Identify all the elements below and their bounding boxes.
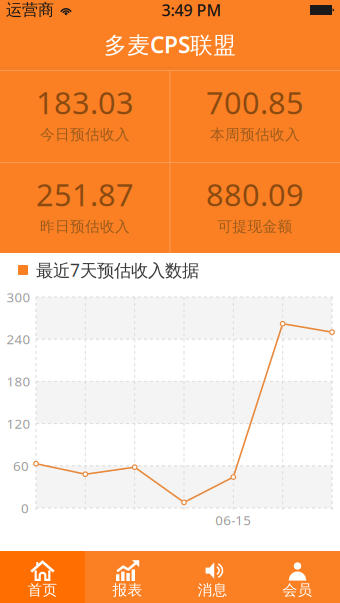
button[interactable]: 183.03 <box>0 69 170 161</box>
staticText: 最近7天预估收入数据 <box>36 258 199 281</box>
button[interactable]: 251.87 <box>0 161 170 253</box>
staticText: 会员 <box>282 581 312 599</box>
button[interactable]: 会员 <box>255 551 340 603</box>
staticText: 251.87 <box>36 174 134 215</box>
staticText: 120 <box>6 415 30 432</box>
staticText: 880.09 <box>206 174 304 215</box>
staticText: 183.03 <box>36 82 134 123</box>
button[interactable]: 880.09 <box>170 161 340 253</box>
button[interactable]: 消息 <box>170 551 255 603</box>
staticText: 今日预估收入 <box>40 126 130 144</box>
button[interactable]: 多麦CPS联盟 <box>0 20 340 69</box>
staticText: 700.85 <box>206 82 304 123</box>
staticText: 运营商 <box>6 0 54 20</box>
button[interactable]: 首页 <box>0 551 85 603</box>
staticText: 0 <box>21 499 29 517</box>
staticText: 06-15 <box>215 511 251 529</box>
staticText: 本周预估收入 <box>210 126 300 144</box>
staticText: 180 <box>6 372 30 390</box>
staticText: 报表 <box>112 581 142 599</box>
button[interactable]: 700.85 <box>170 69 340 161</box>
staticText: 60 <box>13 457 29 475</box>
staticText: 多麦CPS联盟 <box>104 29 236 59</box>
staticText: 3:49 PM <box>161 0 221 21</box>
staticText: 首页 <box>27 581 57 599</box>
staticText: 240 <box>6 330 30 348</box>
button[interactable]: 报表 <box>85 551 170 603</box>
staticText: 消息 <box>197 581 227 599</box>
staticText: 昨日预估收入 <box>40 218 130 236</box>
staticText: 300 <box>6 288 30 306</box>
staticText: 可提现金额 <box>217 218 292 236</box>
